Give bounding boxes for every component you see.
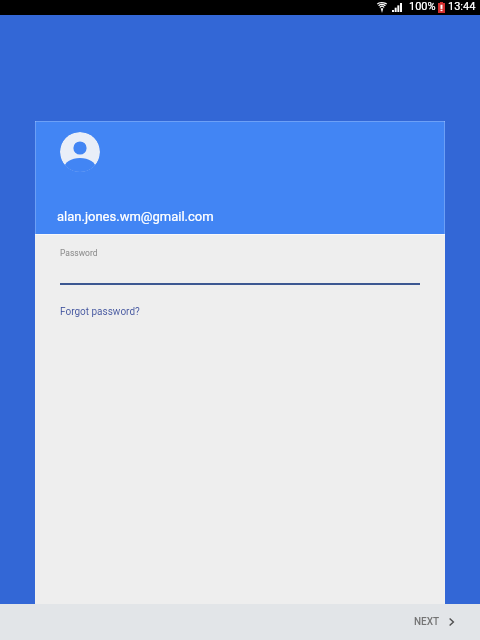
button[interactable]: Forgot password? [60,298,148,326]
staticText: Forgot password? [60,306,140,318]
staticText: alan.jones.wm@gmail.com [57,209,214,224]
button[interactable]: NEXT [398,608,480,636]
staticText: Password [60,248,98,258]
button[interactable]: Password [60,234,420,285]
other: Account avatar [60,132,100,172]
staticText: 13:44 [448,0,476,13]
staticText: 100% [409,0,436,13]
staticText: NEXT [414,616,440,628]
button[interactable]: Account avatar [35,121,445,234]
